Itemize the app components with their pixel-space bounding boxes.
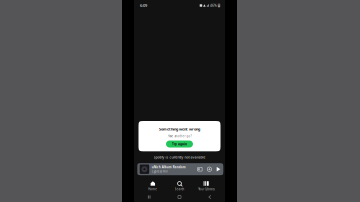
staticText: uNich Album Random [152,165,186,169]
staticText: Cypress Hill [152,169,168,173]
staticText: Try again [172,142,187,146]
staticText: Something went wrong [159,127,200,132]
button[interactable]: Search [166,179,193,192]
staticText: Home [148,187,157,191]
staticText: Search [174,187,184,191]
staticText: Your Library [198,187,214,191]
button[interactable]: Your Library [193,179,219,192]
button[interactable]: Home [139,179,166,192]
button[interactable]: Try again [166,140,193,147]
button[interactable]: Recent apps [134,193,164,201]
button[interactable]: Home [164,193,195,201]
staticText: 6:09 [140,3,147,8]
staticText: 46% [210,3,217,8]
staticText: Have another go? [167,134,191,138]
staticText: Spotify is currently not available [153,155,205,159]
button[interactable]: uNich Album Random [137,163,223,175]
button[interactable]: Back [195,193,225,201]
